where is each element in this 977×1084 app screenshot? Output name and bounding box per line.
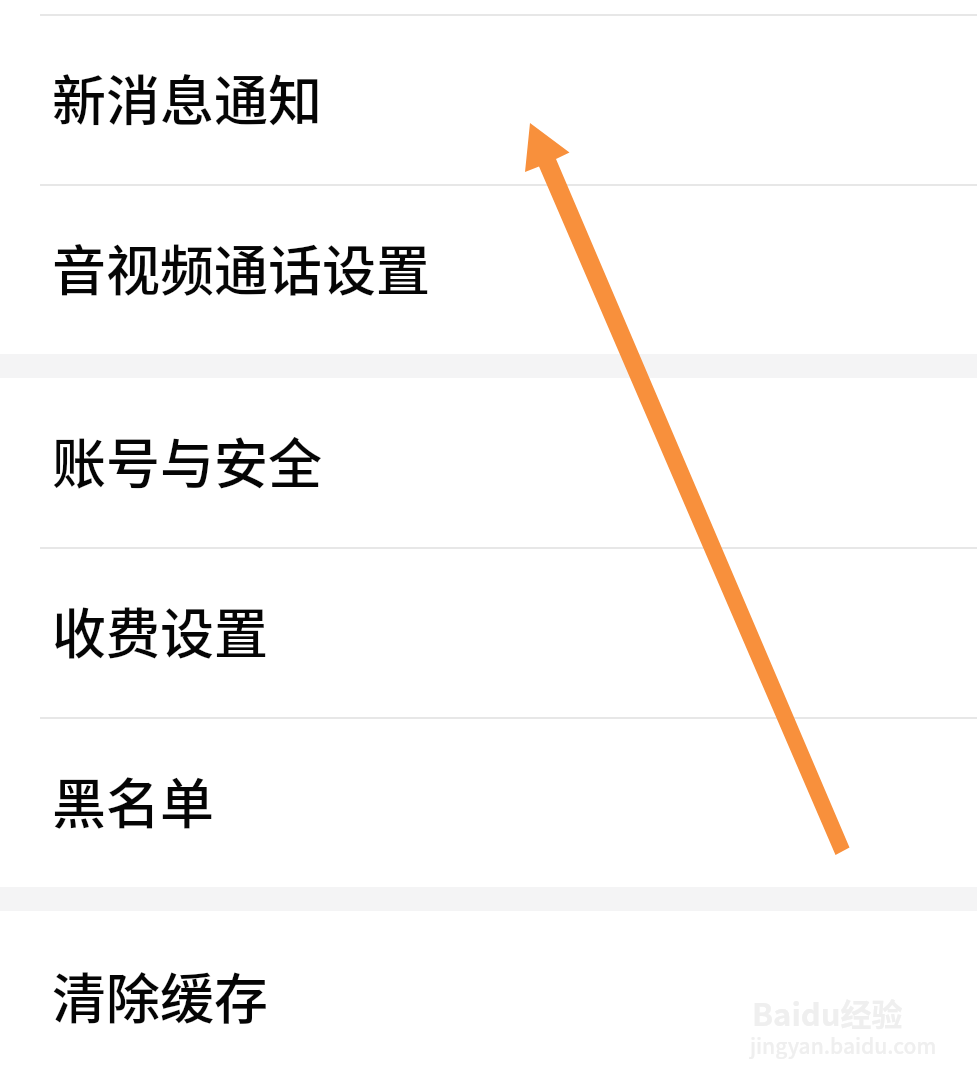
staticText: jingyan.baidu.com [750, 1030, 937, 1060]
other: Annotation arrow pointing at 新消息通知 [520, 118, 856, 862]
staticText: 收费设置 [52, 591, 268, 669]
button[interactable]: 黑名单 [0, 719, 977, 887]
button[interactable]: 清除缓存 [0, 911, 977, 1084]
button[interactable]: 账号与安全 [0, 378, 977, 547]
button[interactable]: 新消息通知 [0, 16, 977, 184]
staticText: 账号与安全 [52, 421, 322, 499]
staticText: 黑名单 [52, 761, 214, 839]
staticText: 清除缓存 [52, 956, 268, 1034]
button[interactable]: 收费设置 [0, 549, 977, 717]
staticText: 新消息通知 [52, 58, 322, 136]
staticText: Baidu经验 [752, 990, 903, 1035]
staticText: 音视频通话设置 [52, 228, 430, 306]
button[interactable]: 音视频通话设置 [0, 186, 977, 354]
